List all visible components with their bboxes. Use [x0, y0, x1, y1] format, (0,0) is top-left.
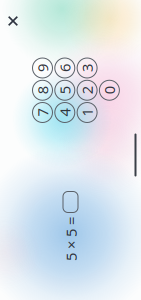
button[interactable]: 0 — [98, 79, 120, 101]
staticText: 1 — [83, 103, 91, 122]
staticText: 8 — [38, 80, 46, 100]
staticText: 5 — [61, 80, 69, 100]
staticText: 6 — [61, 58, 69, 78]
staticText: 0 — [105, 80, 113, 100]
button[interactable]: 1 — [76, 101, 98, 123]
button[interactable]: Close — [0, 8, 26, 34]
button[interactable]: 8 — [31, 79, 53, 101]
staticText: 7 — [38, 103, 46, 122]
button[interactable]: 7 — [31, 101, 53, 123]
staticText: 5 × 5 = — [49, 229, 93, 249]
staticText: 3 — [83, 58, 91, 78]
button[interactable]: 3 — [76, 57, 98, 79]
button[interactable]: 2 — [76, 79, 98, 101]
button[interactable]: 6 — [54, 57, 76, 79]
staticText: 2 — [83, 80, 91, 100]
button[interactable]: 4 — [54, 101, 76, 123]
button[interactable]: 9 — [31, 57, 53, 79]
button[interactable]: 5 — [54, 79, 76, 101]
staticText: 9 — [38, 58, 46, 78]
staticText: 4 — [61, 103, 69, 122]
